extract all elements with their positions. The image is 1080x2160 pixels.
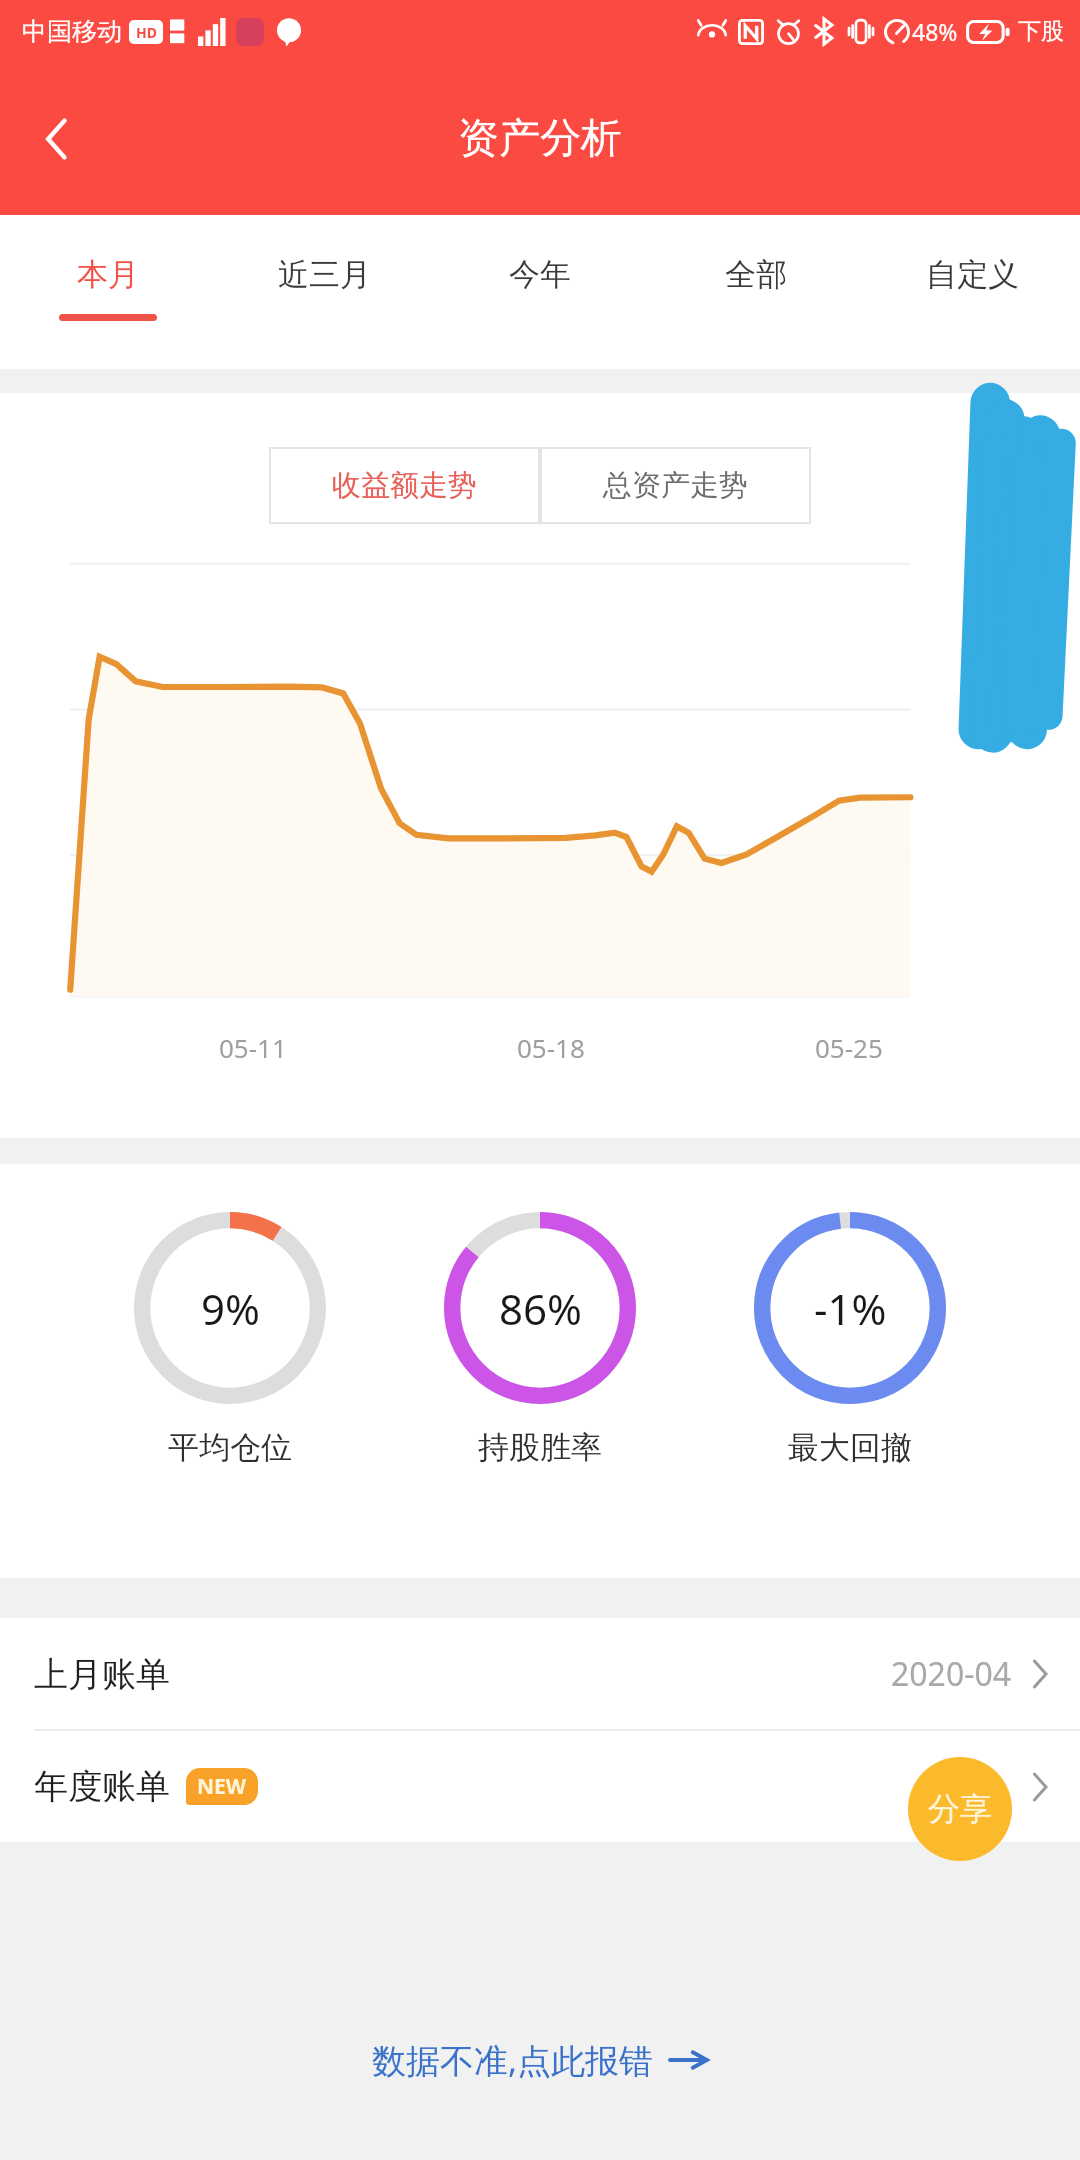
staticText: 48% (912, 16, 958, 47)
staticText: 最大回撤 (788, 1428, 912, 1467)
staticText: 上月账单 (34, 1653, 170, 1696)
button[interactable]: 今年 (432, 215, 648, 345)
button[interactable]: 分享 (908, 1757, 1012, 1861)
button[interactable]: 近三月 (216, 215, 432, 345)
staticText: 9% (201, 1280, 260, 1337)
staticText: 持股胜率 (478, 1428, 602, 1467)
button[interactable]: 本月 (0, 215, 216, 345)
staticText: 收益额走势 (332, 467, 477, 504)
button[interactable]: 总资产走势 (540, 447, 811, 524)
staticText: 资产分析 (458, 113, 622, 165)
staticText: 本月 (77, 255, 139, 294)
button[interactable]: 年度账单 (0, 1731, 1080, 1842)
staticText: 自定义 (926, 255, 1019, 294)
button[interactable]: Back (14, 96, 100, 182)
staticText: 下股 (1018, 17, 1064, 46)
staticText: 数据不准,点此报错 (372, 2037, 654, 2083)
button[interactable]: 数据不准,点此报错 (352, 2027, 728, 2093)
staticText: HD (136, 23, 157, 42)
button[interactable]: 全部 (648, 215, 864, 345)
staticText: 05-25 (815, 1030, 883, 1065)
staticText: -1% (814, 1280, 887, 1337)
staticText: 86% (499, 1280, 582, 1337)
button[interactable]: 上月账单 (0, 1618, 1080, 1729)
staticText: 全部 (725, 255, 787, 294)
staticText: NEW (197, 1772, 247, 1801)
staticText: 中国移动 (22, 16, 122, 47)
staticText: 05-18 (517, 1030, 585, 1065)
staticText: 今年 (509, 255, 571, 294)
staticText: 05-11 (219, 1030, 287, 1065)
button[interactable]: 自定义 (864, 215, 1080, 345)
staticText: 总资产走势 (603, 467, 748, 504)
staticText: 分享 (928, 1789, 992, 1829)
staticText: 近三月 (278, 255, 371, 294)
staticText: 平均仓位 (168, 1428, 292, 1467)
staticText: 2020-04 (891, 1652, 1012, 1696)
button[interactable]: 收益额走势 (269, 447, 540, 524)
staticText: 年度账单 (34, 1765, 170, 1808)
